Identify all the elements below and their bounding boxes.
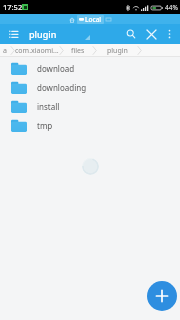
staticText: install: [37, 101, 60, 112]
button[interactable]: Menu: [6, 27, 21, 42]
button[interactable]: downloading: [0, 78, 180, 97]
staticText: files: [71, 46, 85, 56]
button[interactable]: files: [64, 44, 92, 57]
button[interactable]: install: [0, 97, 180, 116]
staticText: a: [3, 46, 7, 56]
button[interactable]: Local: [79, 15, 102, 24]
staticText: 44%: [165, 3, 178, 12]
button[interactable]: Add: [147, 281, 177, 311]
staticText: downloading: [37, 82, 87, 93]
staticText: tmp: [37, 120, 53, 131]
staticText: com.xiaomi...: [15, 46, 59, 56]
button[interactable]: Close: [141, 24, 161, 44]
staticText: Local: [85, 15, 102, 24]
button[interactable]: com.xiaomi...: [15, 44, 59, 57]
button[interactable]: download: [0, 59, 180, 78]
staticText: 17:52: [3, 2, 23, 12]
button[interactable]: tmp: [0, 116, 180, 135]
button[interactable]: Sort: [82, 32, 92, 42]
button[interactable]: More options: [161, 26, 177, 42]
button[interactable]: a: [0, 44, 10, 57]
staticText: plugin: [29, 28, 57, 40]
staticText: download: [37, 63, 75, 74]
button[interactable]: plugin: [97, 44, 137, 57]
button[interactable]: Search: [121, 24, 141, 44]
staticText: plugin: [107, 46, 128, 56]
